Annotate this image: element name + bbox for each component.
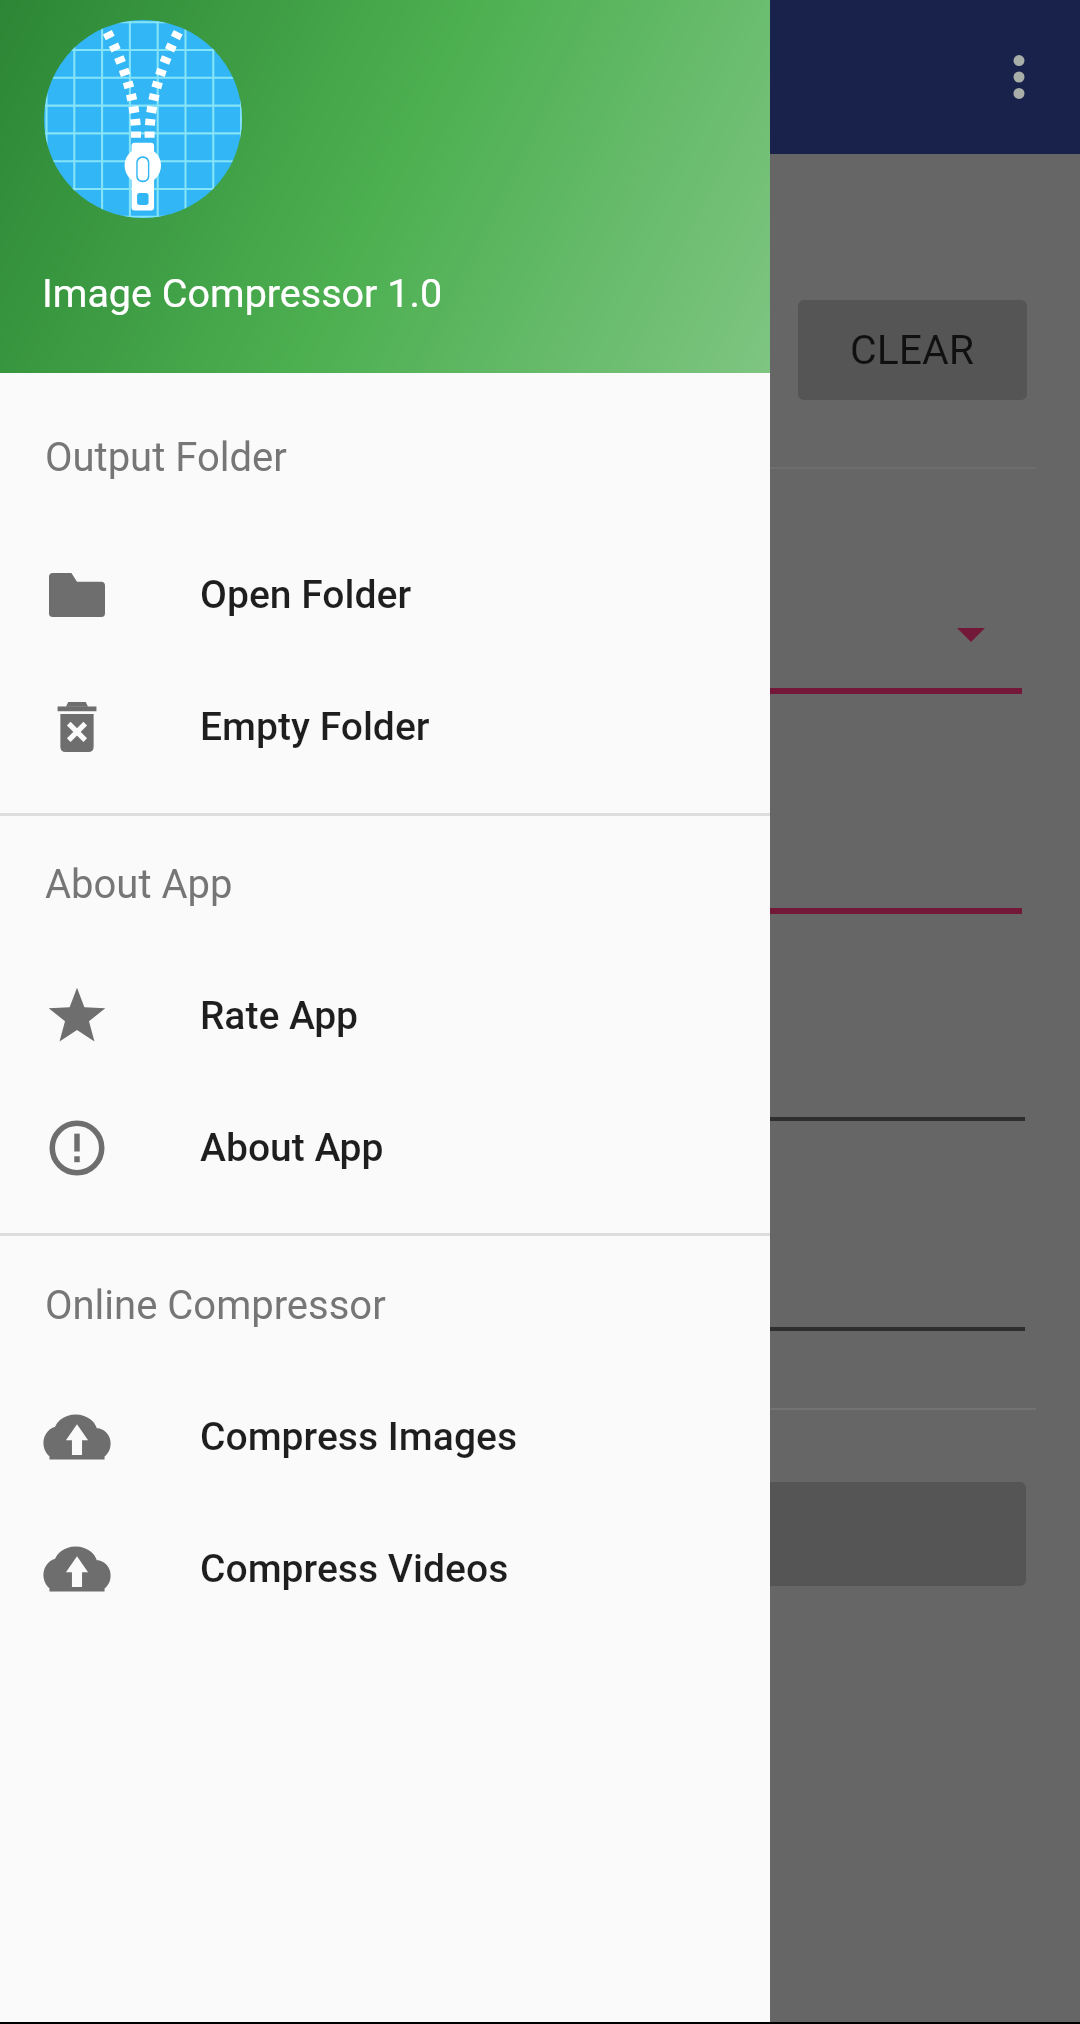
staticText: About App: [45, 861, 233, 908]
staticText: Rate App: [200, 993, 359, 1039]
staticText: CLEAR: [850, 326, 975, 374]
button[interactable]: Empty Folder: [0, 661, 770, 793]
staticText: About App: [200, 1125, 384, 1171]
button[interactable]: About App: [0, 1082, 770, 1214]
staticText: Compress Videos: [200, 1546, 509, 1592]
button[interactable]: Rate App: [0, 950, 770, 1082]
button[interactable]: Open Folder: [0, 529, 770, 661]
button[interactable]: More options: [971, 29, 1067, 125]
button[interactable]: Compress Videos: [0, 1503, 770, 1635]
button[interactable]: CLEAR: [798, 300, 1027, 400]
staticText: Empty Folder: [200, 704, 430, 750]
staticText: Output Folder: [45, 434, 287, 481]
button[interactable]: [660, 1482, 1026, 1586]
staticText: Compress Images: [200, 1414, 518, 1460]
staticText: Online Compressor: [45, 1282, 386, 1329]
button[interactable]: Compress Images: [0, 1371, 770, 1503]
staticText: Open Folder: [200, 572, 412, 618]
staticText: Image Compressor 1.0: [42, 270, 443, 316]
